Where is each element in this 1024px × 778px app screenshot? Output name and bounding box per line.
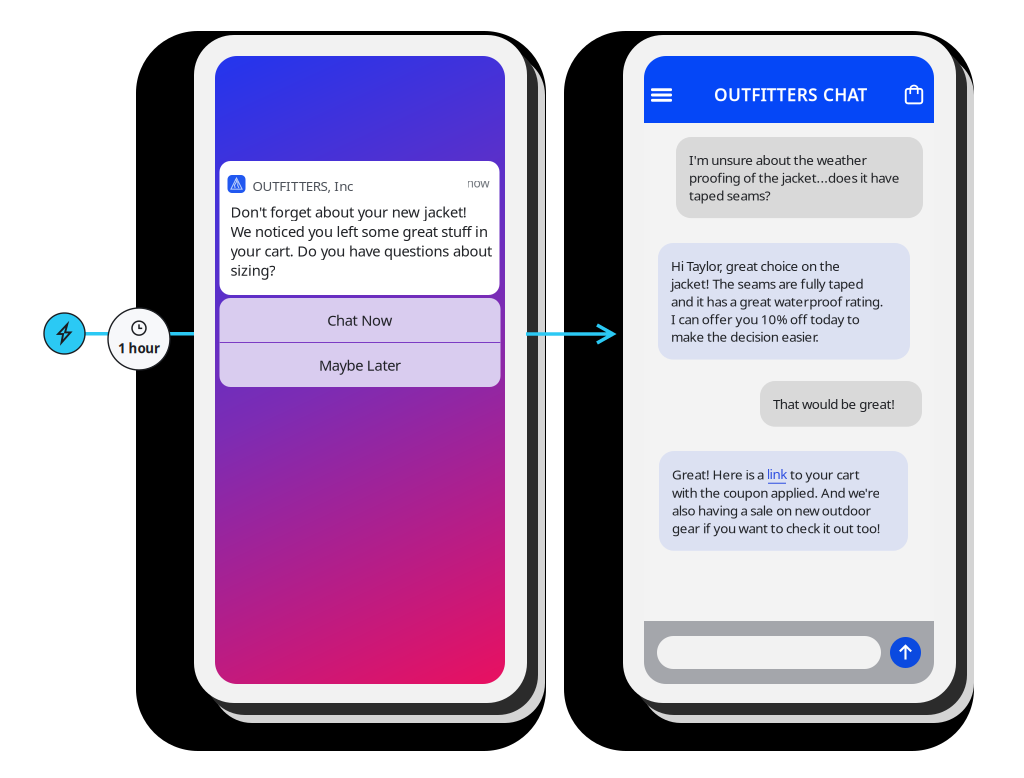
staticText: I'm unsure about the weather proofing of… — [689, 151, 900, 204]
button[interactable]: Maybe Later — [219, 343, 500, 387]
staticText: OUTFITTERS CHAT — [714, 83, 867, 106]
staticText: Hi Taylor, great choice on the jacket! T… — [671, 257, 884, 345]
staticText: with the coupon applied. And we're also … — [672, 484, 881, 537]
staticText: 1 hour — [118, 339, 160, 357]
staticText: That would be great! — [773, 395, 895, 413]
staticText: Chat Now — [327, 310, 393, 330]
staticText: link — [767, 465, 787, 483]
button[interactable]: Cart — [899, 79, 929, 109]
button[interactable]: Menu — [645, 80, 677, 110]
button[interactable]: Send — [890, 637, 921, 668]
staticText: now — [466, 175, 489, 191]
staticText: Great! Here is a — [672, 465, 767, 483]
button[interactable]: Chat Now — [219, 298, 500, 342]
staticText: Maybe Later — [319, 355, 401, 375]
staticText: to your cart — [787, 465, 860, 483]
staticText: OUTFITTERS, Inc — [252, 177, 353, 195]
button[interactable]: link — [767, 465, 787, 484]
staticText: Don't forget about your new jacket! We n… — [230, 202, 492, 280]
